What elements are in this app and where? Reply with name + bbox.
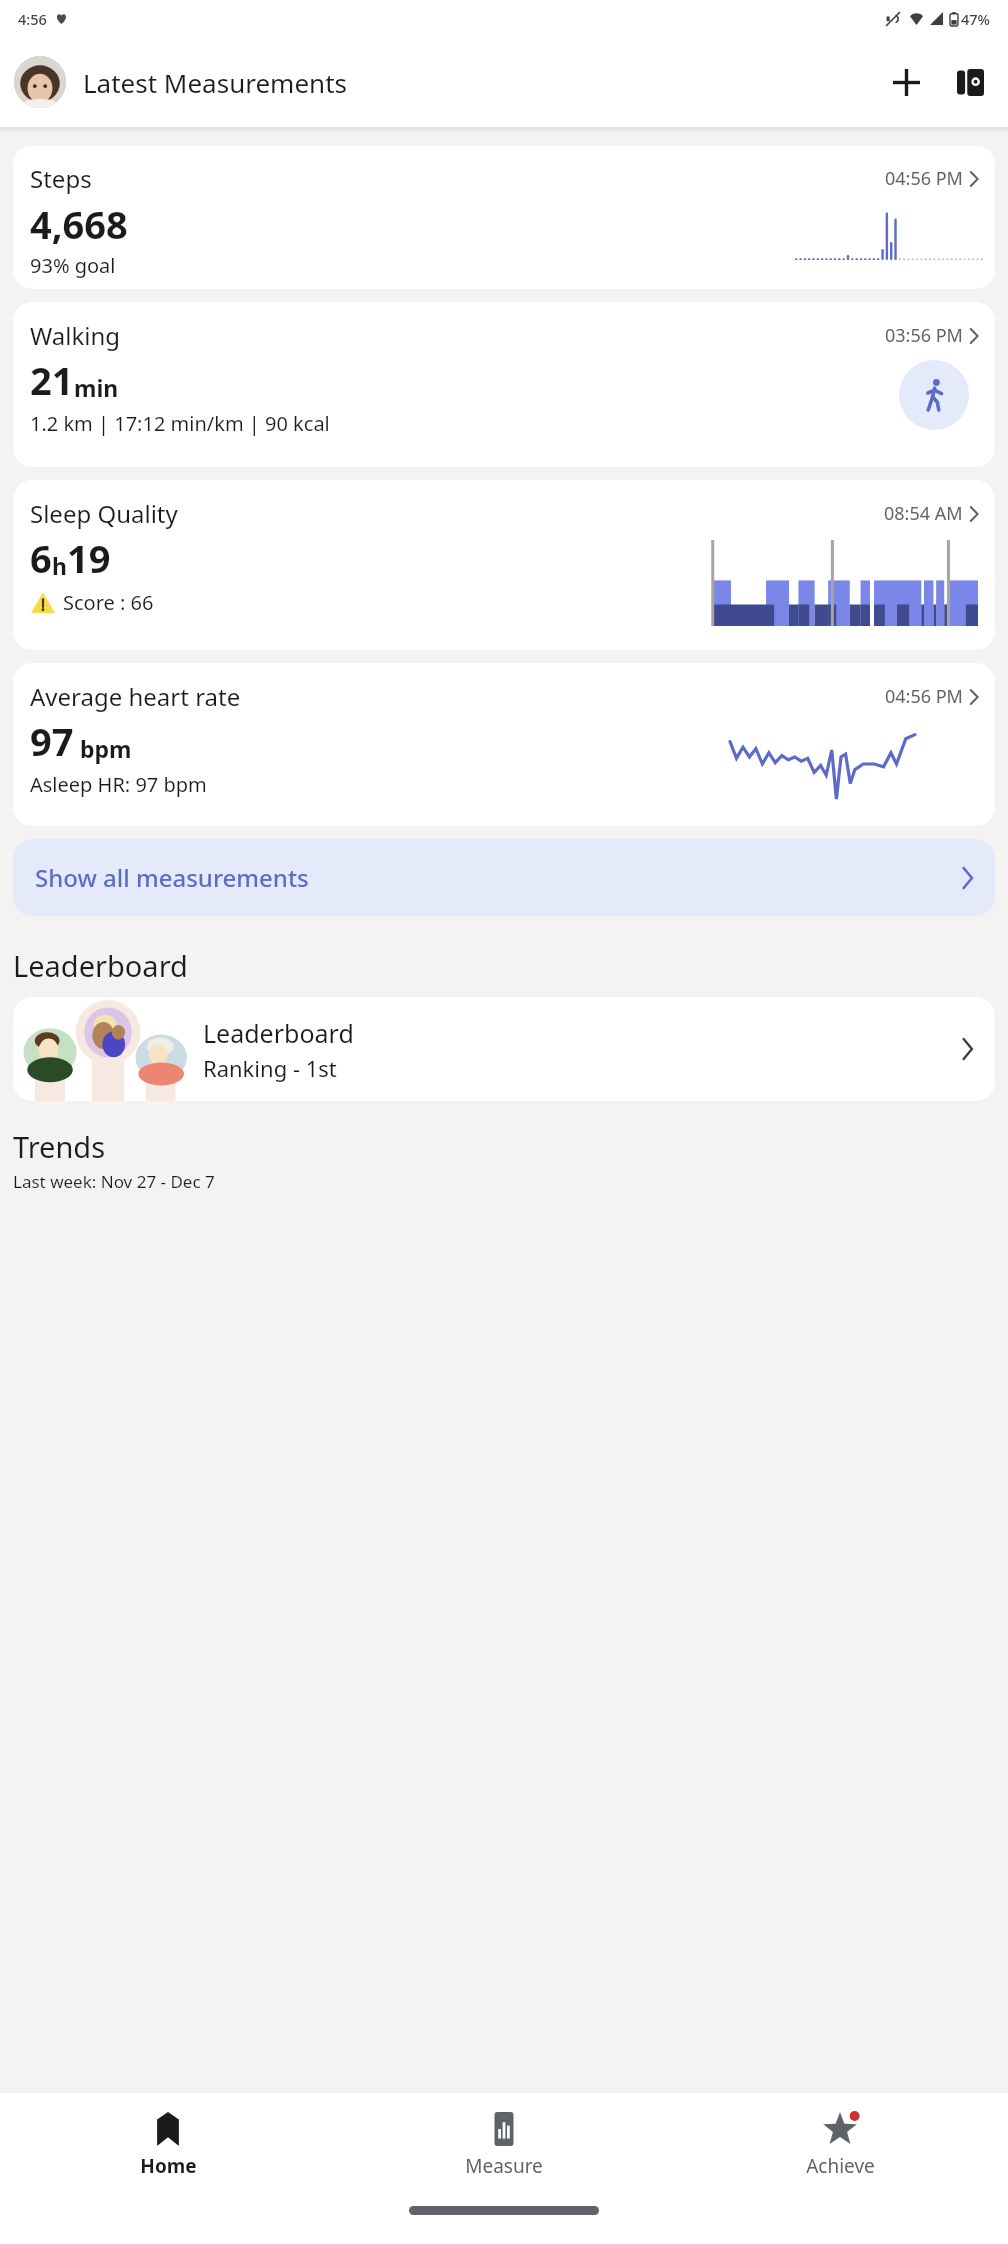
staticText: 19: [67, 532, 111, 584]
staticText: Asleep HR: 97 bpm: [30, 771, 207, 798]
button[interactable]: Profile: [14, 56, 66, 108]
staticText: Steps: [30, 162, 92, 195]
staticText: 4:56: [18, 9, 47, 29]
staticText: 08:54 AM: [884, 501, 963, 526]
staticText: Last week: Nov 27 - Dec 7: [13, 1170, 215, 1193]
staticText: Trends: [13, 1127, 106, 1166]
staticText: bpm: [74, 733, 132, 764]
staticText: 03:56 PM: [885, 323, 963, 348]
button[interactable]: Home: [0, 2093, 336, 2198]
staticText: min: [74, 372, 119, 403]
staticText: Average heart rate: [30, 680, 241, 713]
staticText: 93% goal: [30, 252, 116, 279]
staticText: h: [52, 550, 67, 581]
staticText: Home: [140, 2153, 197, 2179]
button[interactable]: Average heart rate: [13, 663, 995, 826]
staticText: 6: [30, 532, 52, 584]
staticText: Show all measurements: [35, 861, 309, 894]
staticText: Score : 66: [63, 589, 154, 616]
staticText: Latest Measurements: [83, 65, 347, 100]
staticText: Leaderboard: [203, 1016, 354, 1050]
staticText: 04:56 PM: [885, 684, 963, 709]
button[interactable]: Walking: [13, 302, 995, 467]
staticText: 1.2 km | 17:12 min/km | 90 kcal: [30, 410, 330, 437]
staticText: Walking: [30, 319, 121, 352]
button[interactable]: Show all measurements: [13, 839, 995, 916]
button[interactable]: Steps: [13, 146, 995, 289]
button[interactable]: Sleep Quality: [13, 480, 995, 650]
staticText: 04:56 PM: [885, 166, 963, 191]
staticText: 4,668: [30, 198, 128, 250]
staticText: Sleep Quality: [30, 497, 178, 530]
staticText: 21: [30, 354, 74, 406]
staticText: Leaderboard: [13, 946, 188, 985]
button[interactable]: Achieve: [672, 2093, 1008, 2198]
button[interactable]: Measure: [336, 2093, 672, 2198]
button[interactable]: Scan device: [946, 58, 994, 106]
staticText: 47%: [961, 9, 990, 29]
staticText: Measure: [465, 2153, 543, 2179]
button[interactable]: Leaderboard: [13, 997, 995, 1101]
staticText: Ranking - 1st: [203, 1053, 337, 1083]
button[interactable]: Add: [882, 58, 930, 106]
staticText: Achieve: [806, 2153, 875, 2179]
staticText: 97: [30, 715, 74, 767]
